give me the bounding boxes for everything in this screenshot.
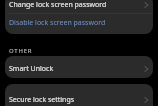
staticText: Secure lock settings xyxy=(9,95,75,105)
staticText: Smart Unlock xyxy=(9,64,54,74)
other: Open Secure lock settings xyxy=(144,97,149,103)
staticText: Change lock screen password xyxy=(9,0,107,10)
other: Open Smart Unlock xyxy=(144,66,149,72)
button[interactable]: Smart Unlock xyxy=(5,56,153,78)
button[interactable]: Disable lock screen password xyxy=(5,14,153,34)
button[interactable]: Secure lock settings xyxy=(5,84,153,106)
other: Open Change lock screen password xyxy=(144,2,149,8)
staticText: Disable lock screen password xyxy=(9,18,106,28)
button[interactable]: Change lock screen password xyxy=(5,0,153,13)
staticText: OTHER xyxy=(9,47,33,55)
